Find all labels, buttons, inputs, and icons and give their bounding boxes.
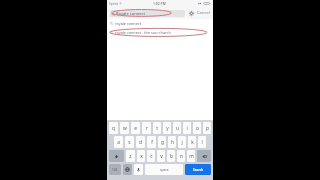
button[interactable]: Search (185, 164, 211, 175)
staticText: n (180, 153, 183, 160)
button[interactable]: o (193, 122, 201, 134)
staticText: Royale connect (116, 11, 146, 17)
staticText: w (123, 125, 127, 132)
button[interactable]: p (203, 122, 211, 134)
button[interactable]: f (147, 136, 156, 148)
button[interactable]: y (163, 122, 171, 134)
staticText: Sprint (109, 2, 118, 6)
staticText: b (170, 153, 173, 160)
button[interactable]: h (168, 136, 176, 148)
staticText: z (129, 153, 132, 160)
staticText: 123 (112, 168, 118, 172)
staticText: x (140, 153, 143, 160)
staticText: g (161, 139, 164, 146)
staticText: f (151, 139, 153, 146)
staticText: c (150, 153, 153, 160)
staticText: l (201, 139, 203, 146)
staticText: v (160, 153, 163, 160)
button[interactable]: d (136, 136, 145, 148)
button[interactable]: j (178, 136, 186, 148)
button[interactable]: c (147, 150, 155, 162)
staticText: e (134, 125, 137, 132)
button[interactable]: s (125, 136, 134, 148)
button[interactable]: Shift (109, 150, 124, 162)
staticText: o (196, 125, 199, 132)
button[interactable]: royale connect - the sun church (107, 28, 213, 37)
staticText: p (206, 125, 209, 132)
button[interactable]: n (177, 150, 185, 162)
button[interactable]: royale connect (107, 19, 213, 28)
button[interactable]: space (145, 164, 183, 175)
button[interactable]: t (153, 122, 161, 134)
button[interactable]: a (114, 136, 123, 148)
button[interactable]: l (198, 136, 206, 148)
staticText: q (112, 125, 115, 132)
button[interactable]: Backspace (197, 150, 211, 162)
button[interactable]: Numbers (109, 164, 121, 175)
staticText: y (166, 125, 169, 132)
staticText: t (156, 125, 158, 132)
button[interactable]: e (131, 122, 140, 134)
button[interactable]: q (109, 122, 118, 134)
button[interactable]: b (167, 150, 175, 162)
staticText: 1:02 PM (153, 1, 166, 6)
staticText: royale connect - the sun church (115, 30, 171, 35)
staticText: h (171, 139, 174, 146)
button[interactable]: g (158, 136, 166, 148)
button[interactable]: Settings (187, 9, 196, 18)
button[interactable]: x (137, 150, 145, 162)
staticText: royale connect (115, 21, 142, 26)
button[interactable]: z (126, 150, 135, 162)
button[interactable]: i (183, 122, 191, 134)
staticText: Cancel (197, 10, 210, 16)
staticText: Search (193, 168, 204, 172)
staticText: j (181, 139, 183, 146)
staticText: k (191, 139, 194, 146)
staticText: space (160, 168, 169, 172)
staticText: i (186, 125, 188, 132)
button[interactable]: r (142, 122, 151, 134)
button[interactable]: k (188, 136, 196, 148)
button[interactable]: w (120, 122, 129, 134)
button[interactable]: u (173, 122, 181, 134)
button[interactable]: Cancel (197, 10, 210, 16)
button[interactable]: Emoji keyboard (123, 164, 132, 175)
button[interactable]: v (157, 150, 165, 162)
staticText: r (146, 125, 148, 132)
button[interactable]: m (187, 150, 195, 162)
staticText: a (117, 139, 120, 146)
staticText: u (176, 125, 179, 132)
staticText: s (128, 139, 131, 146)
staticText: m (189, 153, 194, 160)
button[interactable]: Royale connect (110, 10, 185, 17)
staticText: d (139, 139, 142, 146)
button[interactable]: Dictation (134, 164, 143, 175)
